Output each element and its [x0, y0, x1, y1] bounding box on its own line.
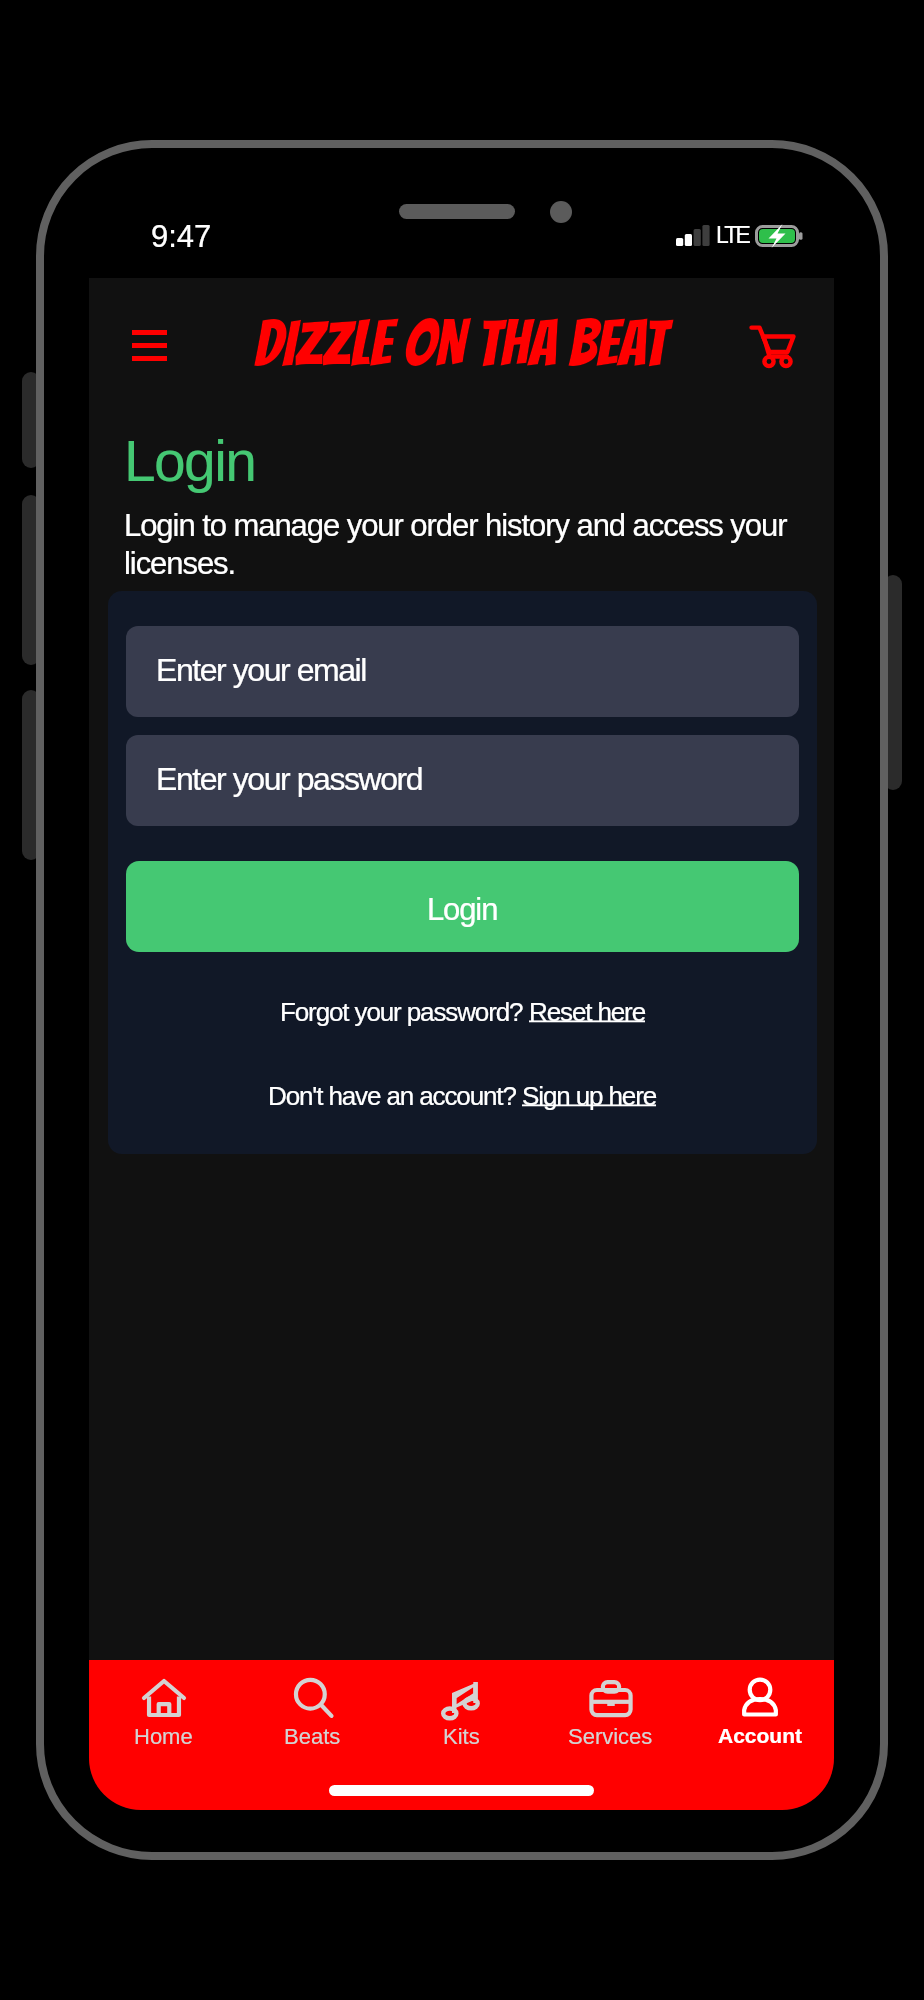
button[interactable]: Reset here [529, 997, 646, 1026]
button[interactable]: Kits [387, 1660, 536, 1760]
staticText: Sign up here [522, 1081, 657, 1110]
staticText: Login [427, 892, 498, 927]
staticText: Home [134, 1724, 193, 1749]
button[interactable]: Shopping cart [737, 310, 807, 380]
staticText: LTE [716, 222, 749, 248]
button[interactable]: Services [536, 1660, 685, 1760]
button[interactable]: Enter your email [126, 626, 799, 717]
button[interactable]: Home [89, 1660, 238, 1760]
button[interactable]: Account [685, 1660, 834, 1760]
staticText: Login [124, 429, 256, 493]
staticText: Forgot your password? [280, 997, 529, 1026]
button[interactable]: Login [126, 861, 799, 952]
staticText: Kits [443, 1724, 480, 1749]
staticText: Don't have an account? [268, 1081, 522, 1110]
button[interactable]: Enter your password [126, 735, 799, 826]
staticText: Login to manage your order history and a… [124, 508, 814, 581]
staticText: DIZZLE ON THA BEAT [254, 309, 667, 377]
staticText: Beats [284, 1724, 341, 1749]
staticText: Reset here [529, 997, 646, 1026]
staticText: Enter your email [156, 652, 366, 688]
button[interactable]: Sign up here [522, 1081, 657, 1110]
staticText: 9:47 [151, 219, 212, 254]
staticText: Services [568, 1724, 653, 1749]
staticText: Account [718, 1724, 802, 1747]
button[interactable]: Beats [238, 1660, 387, 1760]
staticText: Enter your password [156, 761, 423, 797]
button[interactable]: Open menu [114, 310, 184, 380]
